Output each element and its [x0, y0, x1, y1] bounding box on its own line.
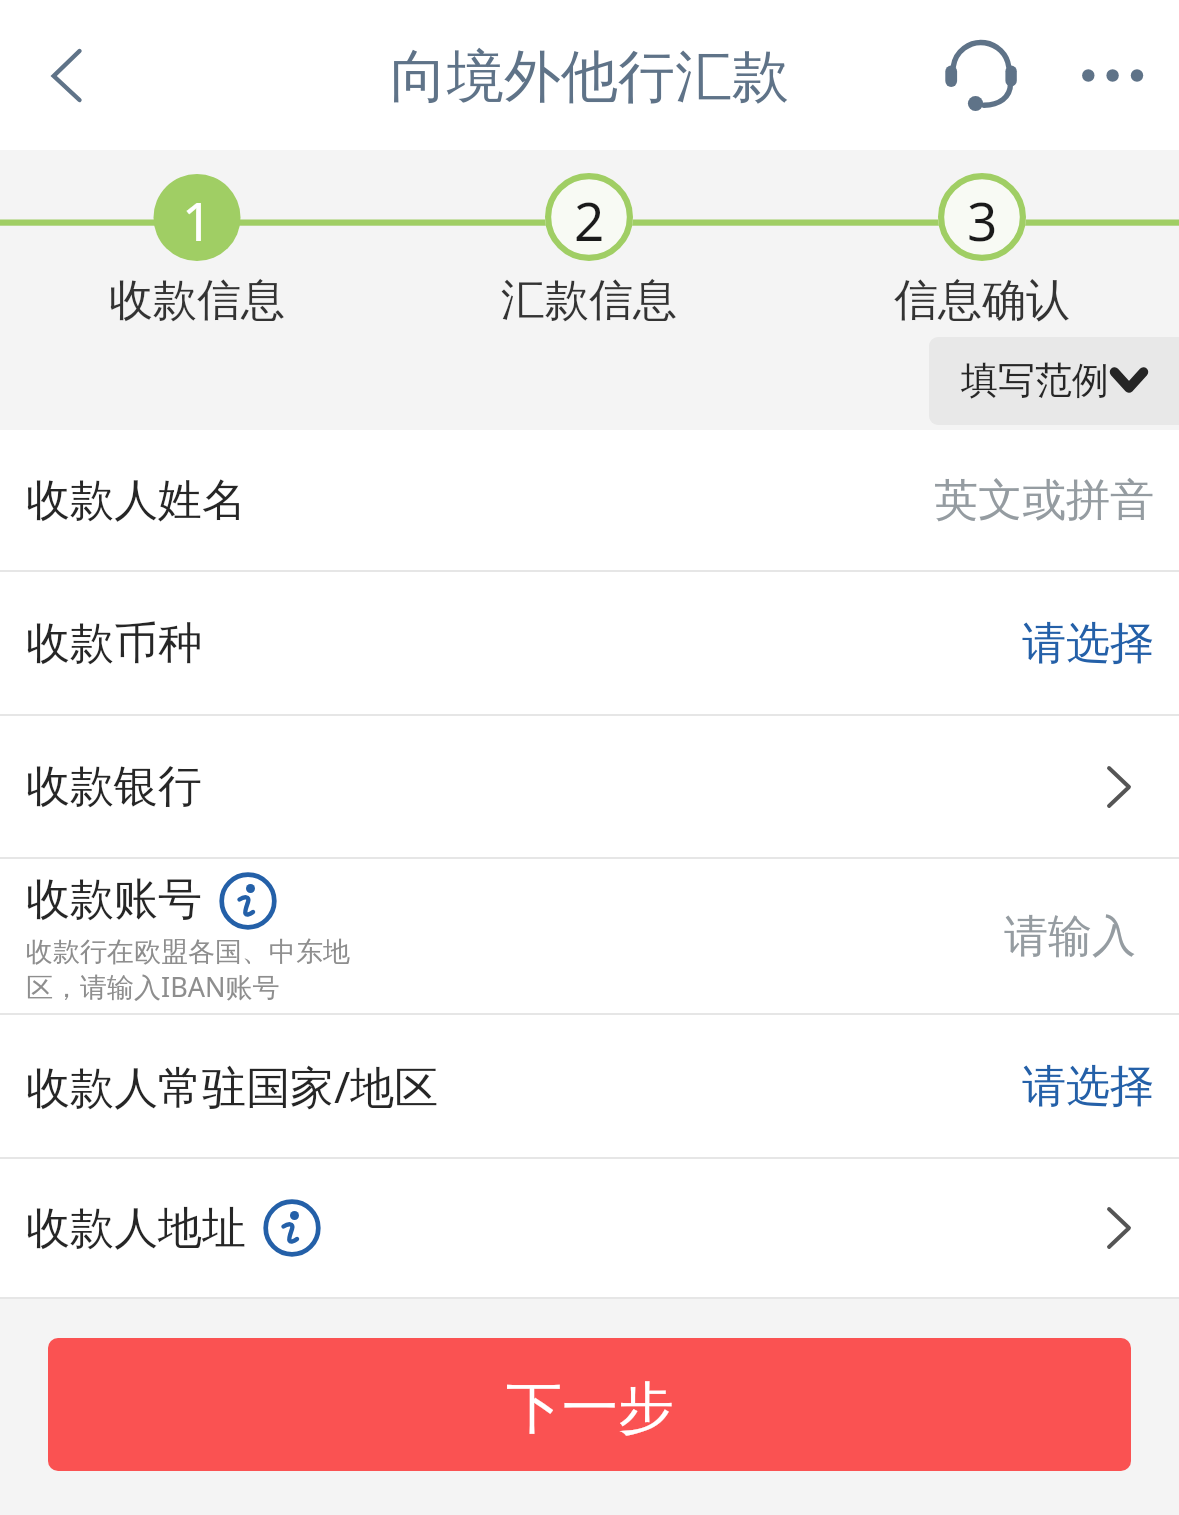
button[interactable]: Back	[22, 35, 102, 115]
button[interactable]: 下一步	[48, 1338, 1131, 1471]
button[interactable]: 收款人常驻国家/地区	[0, 1015, 1179, 1159]
staticText: 1	[182, 184, 213, 256]
staticText: 收款信息	[109, 273, 285, 328]
staticText: 请选择	[1022, 1059, 1154, 1114]
staticText: 收款人姓名	[26, 473, 246, 528]
staticText: 下一步	[506, 1373, 674, 1444]
staticText: 收款人常驻国家/地区	[26, 1056, 439, 1116]
button[interactable]: 收款账号	[0, 859, 1179, 1015]
staticText: 信息确认	[894, 273, 1070, 328]
staticText: 请选择	[1022, 616, 1154, 671]
staticText: 请输入	[1004, 909, 1136, 964]
staticText: 填写范例	[961, 357, 1109, 404]
staticText: 收款行在欧盟各国、中东地 区，请输入IBAN账号	[26, 935, 350, 1005]
staticText: 收款账号	[26, 872, 202, 927]
button[interactable]: More options	[1068, 36, 1148, 116]
button[interactable]: Customer service	[930, 30, 1030, 130]
staticText: 汇款信息	[501, 273, 677, 328]
staticText: 2	[574, 184, 605, 256]
staticText: 收款人地址	[26, 1201, 246, 1256]
staticText: 收款银行	[26, 759, 202, 814]
staticText: 收款币种	[26, 616, 202, 671]
staticText: 英文或拼音	[934, 473, 1154, 528]
button[interactable]: 收款人地址	[0, 1159, 1179, 1299]
button[interactable]: 填写范例	[929, 337, 1179, 425]
button[interactable]: 收款人姓名	[0, 430, 1179, 572]
staticText: 3	[967, 184, 998, 256]
button[interactable]: 收款币种	[0, 572, 1179, 716]
staticText: 向境外他行汇款	[390, 41, 789, 113]
button[interactable]: 收款银行	[0, 716, 1179, 859]
